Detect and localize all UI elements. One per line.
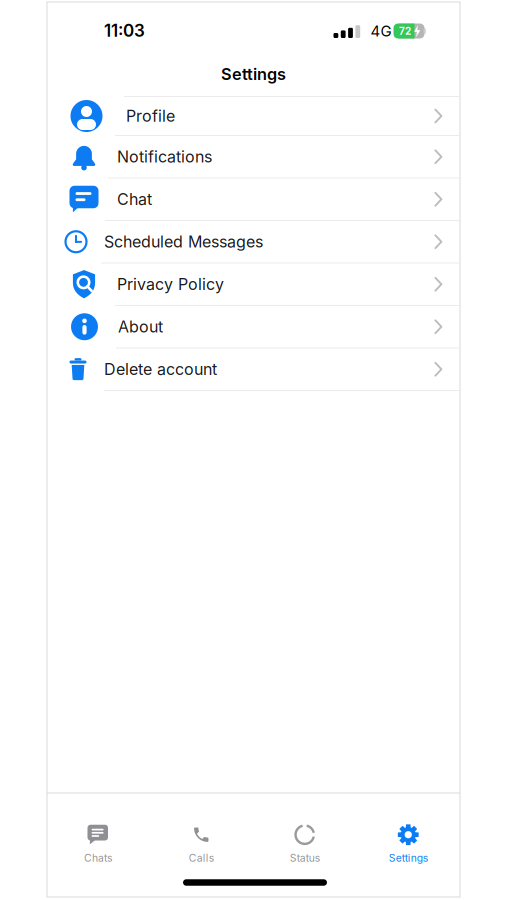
staticText: Profile xyxy=(126,106,175,126)
staticText: About xyxy=(118,317,163,336)
button[interactable]: Status xyxy=(257,818,353,870)
button[interactable]: Delete account xyxy=(47,348,460,390)
button[interactable]: Profile xyxy=(47,95,460,137)
staticText: Chats xyxy=(84,852,112,864)
button[interactable]: Privacy Policy xyxy=(47,263,460,305)
button[interactable]: About xyxy=(47,306,460,348)
button[interactable]: Settings xyxy=(360,818,456,870)
button[interactable]: Calls xyxy=(153,818,249,870)
button[interactable]: Chats xyxy=(50,818,146,870)
staticText: 11:03 xyxy=(104,20,145,41)
button[interactable]: Scheduled Messages xyxy=(47,221,460,263)
button[interactable]: Chat xyxy=(47,178,460,220)
staticText: 4G xyxy=(370,22,391,40)
staticText: Privacy Policy xyxy=(117,275,224,294)
staticText: Notifications xyxy=(117,147,212,166)
button[interactable]: Notifications xyxy=(47,136,460,178)
staticText: Delete account xyxy=(104,360,217,379)
staticText: Settings xyxy=(221,64,286,84)
staticText: Chat xyxy=(117,190,152,209)
staticText: Calls xyxy=(189,852,214,864)
staticText: Status xyxy=(290,852,320,864)
staticText: 72 xyxy=(399,25,411,37)
staticText: Settings xyxy=(389,852,428,864)
staticText: Scheduled Messages xyxy=(104,232,263,251)
